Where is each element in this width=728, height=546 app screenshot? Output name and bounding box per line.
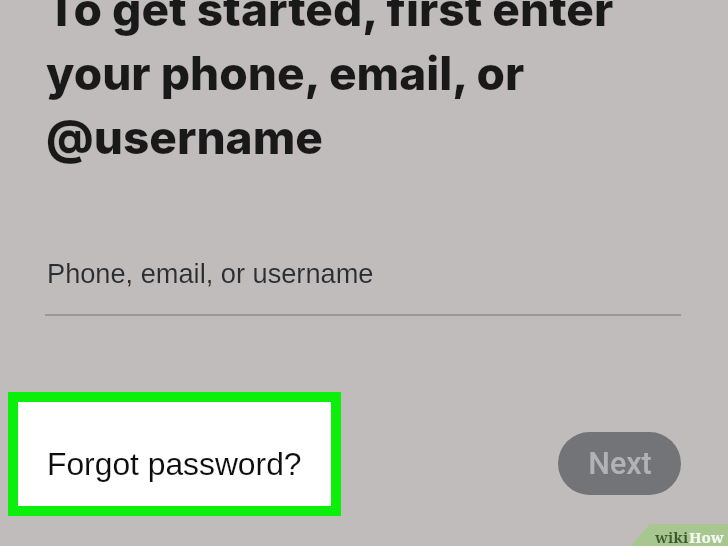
staticText: Forgot password? xyxy=(47,446,302,482)
button[interactable]: Forgot password? xyxy=(18,402,331,506)
staticText: wiki xyxy=(655,527,689,546)
staticText: How xyxy=(689,527,724,546)
button[interactable]: Phone, email, or username xyxy=(45,244,681,316)
staticText: Next xyxy=(588,446,652,482)
staticText: Phone, email, or username xyxy=(47,258,374,288)
staticText: To get started, first enter your phone, … xyxy=(46,0,646,166)
other: wikiHow watermark xyxy=(631,524,728,546)
button[interactable]: Next xyxy=(558,432,681,495)
